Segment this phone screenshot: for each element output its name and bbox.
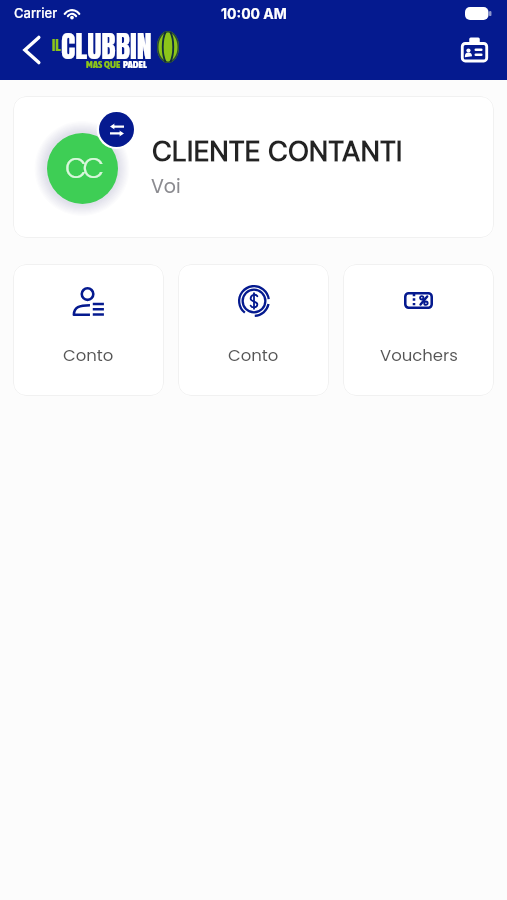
staticText: MAS QUE <box>86 59 123 70</box>
staticText: Carrier <box>14 5 58 21</box>
button[interactable]: Back <box>11 30 51 70</box>
staticText: 10:00 AM <box>221 5 287 22</box>
button[interactable]: CC <box>13 96 494 238</box>
button[interactable]: Conto <box>13 264 164 396</box>
button[interactable]: Vouchers <box>343 264 494 396</box>
button[interactable]: Membership card <box>452 28 496 72</box>
staticText: CC <box>65 149 101 188</box>
staticText: Voi <box>151 173 181 200</box>
staticText: PADEL <box>123 59 148 70</box>
button[interactable]: Conto <box>178 264 329 396</box>
staticText: CLIENTE CONTANTI <box>152 133 403 169</box>
staticText: Vouchers <box>380 344 458 367</box>
button[interactable]: Switch account <box>99 112 134 147</box>
staticText: IL <box>52 35 61 56</box>
staticText: CLUBBIN <box>61 24 152 69</box>
staticText: Conto <box>228 344 279 367</box>
staticText: Conto <box>63 344 114 367</box>
